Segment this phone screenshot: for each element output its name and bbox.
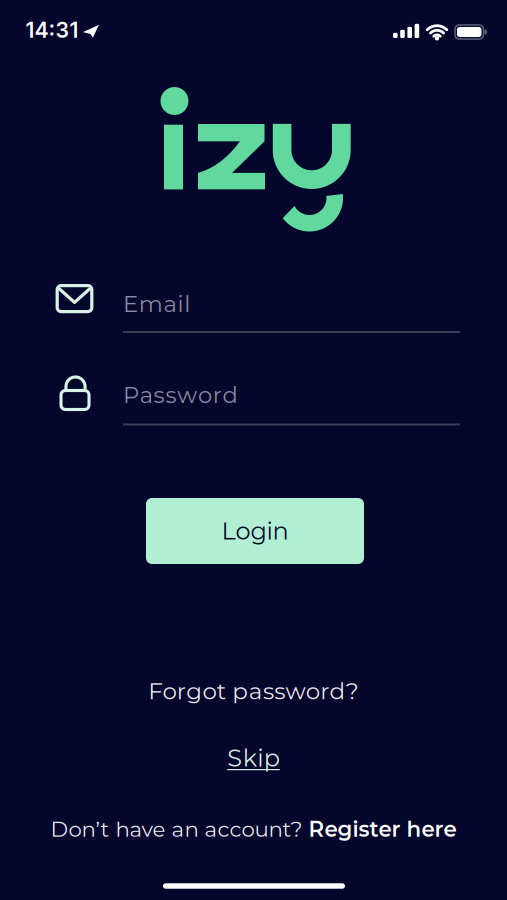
staticText: 14:31: [25, 17, 78, 43]
staticText: Register here: [308, 816, 456, 842]
staticText: Password: [123, 381, 238, 409]
staticText: Forgot password?: [148, 677, 359, 705]
button[interactable]: Login: [146, 498, 364, 564]
button[interactable]: Skip: [227, 743, 280, 773]
button[interactable]: Password: [57, 371, 460, 426]
button[interactable]: Don’t have an account?: [50, 816, 456, 842]
staticText: Don’t have an account?: [50, 816, 308, 842]
button[interactable]: Forgot password?: [148, 677, 359, 705]
staticText: Skip: [227, 743, 280, 773]
button[interactable]: Email: [57, 284, 460, 339]
staticText: Login: [221, 516, 288, 546]
staticText: Email: [123, 290, 190, 318]
